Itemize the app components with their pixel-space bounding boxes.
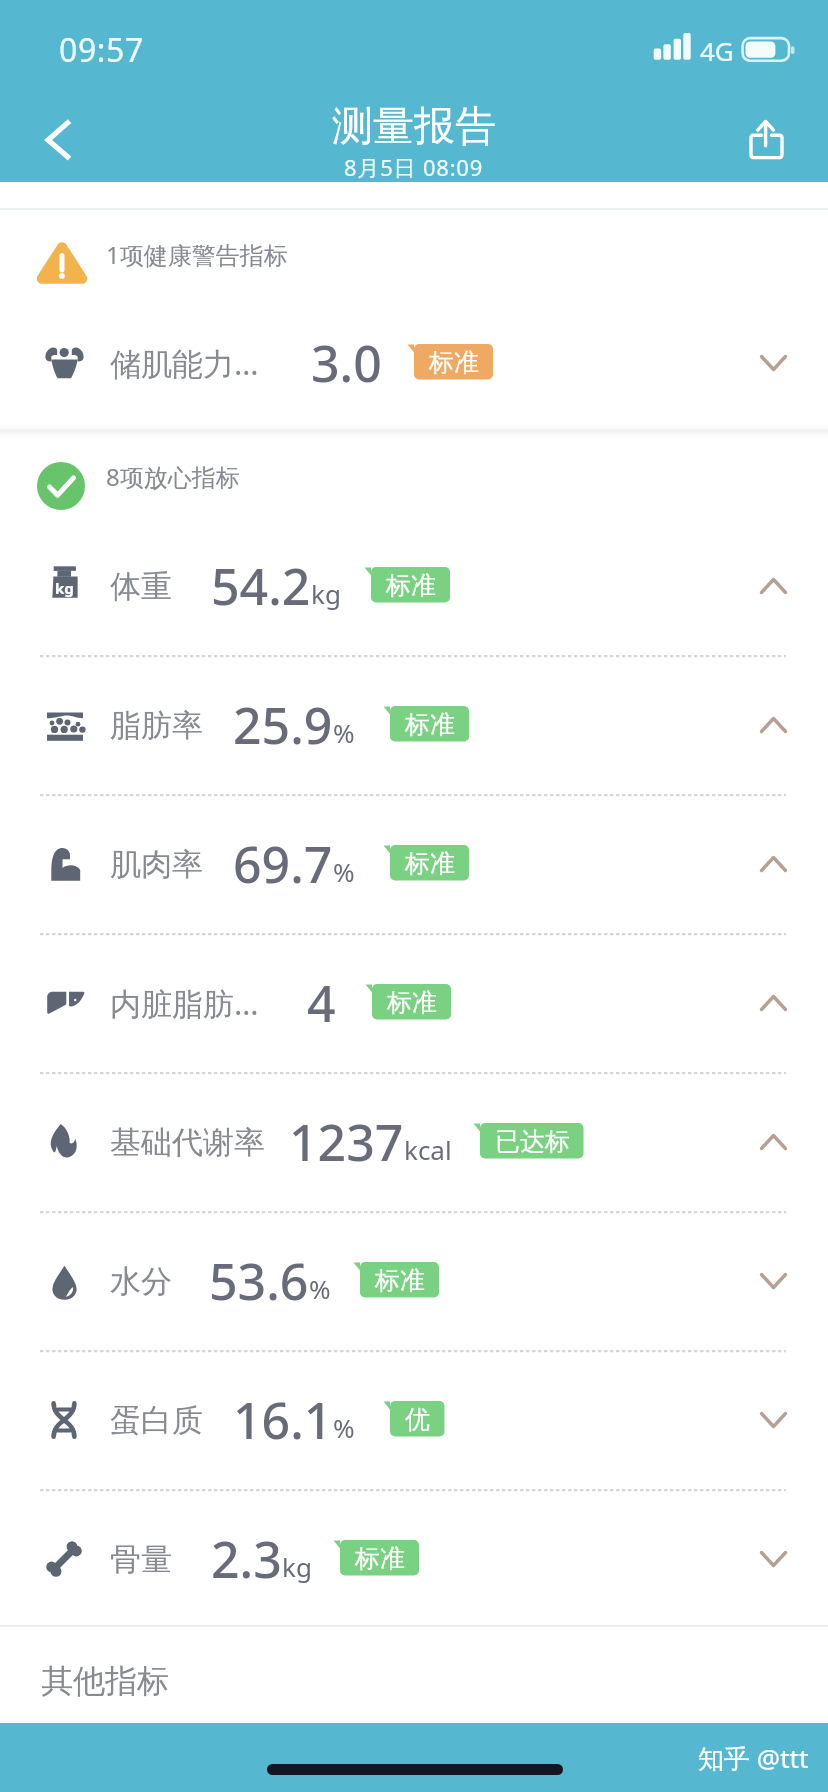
staticText: 8月5日 08:09: [344, 152, 484, 182]
staticText: 标准: [375, 1265, 425, 1296]
button[interactable]: 骨量: [0, 1490, 828, 1628]
button[interactable]: 内脏脂肪…: [0, 934, 828, 1072]
staticText: 1项健康警告指标: [106, 238, 288, 271]
staticText: 53.6: [209, 1247, 309, 1315]
staticText: %: [333, 1410, 355, 1445]
button[interactable]: Share: [745, 115, 789, 163]
staticText: 知乎 @ttt: [698, 1740, 809, 1776]
staticText: 16.1: [233, 1386, 333, 1454]
staticText: 标准: [386, 570, 436, 601]
staticText: 54.2: [211, 552, 311, 620]
staticText: 内脏脂肪…: [110, 982, 259, 1024]
button[interactable]: 蛋白质: [0, 1351, 828, 1489]
button[interactable]: 水分: [0, 1212, 828, 1350]
button[interactable]: kg: [0, 517, 828, 655]
button[interactable]: 脂肪率: [0, 656, 828, 794]
staticText: 标准: [405, 848, 455, 879]
staticText: 69.7: [233, 830, 333, 898]
staticText: 体重: [110, 567, 172, 606]
staticText: kg: [311, 576, 341, 611]
staticText: 已达标: [495, 1126, 570, 1157]
staticText: 水分: [110, 1262, 172, 1301]
button[interactable]: 基础代谢率: [0, 1073, 828, 1211]
button[interactable]: 储肌能力…: [0, 294, 828, 432]
staticText: 肌肉率: [110, 845, 203, 884]
staticText: 储肌能力…: [110, 342, 259, 384]
staticText: kg: [55, 578, 74, 598]
staticText: 标准: [429, 347, 479, 378]
staticText: 25.9: [233, 691, 333, 759]
staticText: 脂肪率: [110, 706, 203, 745]
staticText: 4G: [700, 33, 734, 68]
button[interactable]: Back: [32, 114, 84, 166]
staticText: 2.3: [211, 1525, 282, 1593]
staticText: 标准: [387, 987, 437, 1018]
staticText: %: [333, 854, 355, 889]
staticText: %: [309, 1271, 331, 1306]
staticText: 标准: [355, 1543, 405, 1574]
staticText: 骨量: [110, 1540, 172, 1579]
staticText: 3.0: [311, 329, 382, 397]
staticText: 其他指标: [41, 1661, 169, 1701]
staticText: 蛋白质: [110, 1401, 203, 1440]
staticText: %: [333, 715, 355, 750]
staticText: 09:57: [59, 28, 144, 72]
staticText: kcal: [404, 1132, 452, 1167]
button[interactable]: 肌肉率: [0, 795, 828, 933]
staticText: 优: [405, 1404, 430, 1435]
staticText: 4: [307, 969, 336, 1037]
staticText: 基础代谢率: [110, 1123, 265, 1162]
staticText: 测量报告: [332, 101, 496, 153]
staticText: 8项放心指标: [106, 460, 240, 493]
staticText: kg: [282, 1549, 312, 1584]
staticText: 1237: [289, 1108, 404, 1176]
staticText: 标准: [405, 709, 455, 740]
